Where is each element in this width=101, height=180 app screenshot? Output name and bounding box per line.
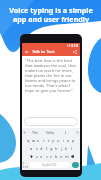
staticText: i (63, 138, 65, 143)
button[interactable]: i (61, 136, 66, 144)
staticText: s (36, 146, 38, 151)
staticText: I (65, 130, 67, 135)
button[interactable]: Hello (42, 128, 58, 136)
staticText: q (27, 138, 30, 143)
button[interactable]: v (49, 152, 54, 160)
staticText: j (61, 146, 63, 151)
button[interactable]: n (59, 152, 64, 160)
button[interactable]: t (46, 136, 51, 144)
staticText: Voice typing is a simple app and user fr… (9, 5, 93, 24)
staticText: Hello (46, 130, 55, 135)
button[interactable]: k (64, 144, 69, 152)
button[interactable]: b (54, 152, 59, 160)
button[interactable]: Enter (72, 162, 79, 168)
staticText: o (67, 138, 70, 143)
staticText: a (30, 146, 33, 151)
button[interactable]: f (44, 144, 49, 152)
button[interactable]: Share (72, 49, 78, 55)
button[interactable] (24, 117, 78, 126)
staticText: v (50, 154, 53, 159)
staticText: m (65, 154, 69, 159)
staticText: w (32, 138, 36, 143)
button[interactable]: I (58, 128, 74, 136)
staticText: Talk to Text (32, 49, 55, 55)
button[interactable]: p (71, 136, 76, 144)
button[interactable]: Voice input (74, 128, 80, 136)
staticText: The (32, 130, 38, 135)
staticText: z (36, 154, 38, 159)
staticText: y (52, 138, 55, 143)
staticText: h (55, 146, 58, 151)
staticText: b (55, 154, 58, 159)
button[interactable]: o (66, 136, 71, 144)
button[interactable]: Symbols (23, 162, 29, 168)
button[interactable]: z (34, 152, 39, 160)
staticText: k (65, 146, 68, 151)
staticText: p (72, 138, 75, 143)
button[interactable]: y (51, 136, 56, 144)
staticText: f (46, 146, 48, 151)
button[interactable]: q (26, 136, 31, 144)
staticText: n (60, 154, 63, 159)
button[interactable]: m (64, 152, 69, 160)
staticText: u (57, 138, 60, 143)
button[interactable]: a (29, 144, 34, 152)
staticText: g (50, 146, 53, 151)
button[interactable]: d (39, 144, 44, 152)
button[interactable]: The (27, 128, 42, 136)
button[interactable]: Backspace (69, 152, 75, 160)
button[interactable]: e (36, 136, 41, 144)
staticText: c (46, 154, 48, 159)
button[interactable]: r (41, 136, 46, 144)
button[interactable]: w (31, 136, 36, 144)
button[interactable]: j (59, 144, 64, 152)
button[interactable]: u (56, 136, 61, 144)
button[interactable]: More (22, 128, 27, 136)
staticText: English (US) (42, 163, 57, 167)
button[interactable]: x (39, 152, 44, 160)
button[interactable]: c (44, 152, 49, 160)
button[interactable]: Back (24, 49, 30, 55)
staticText: l (71, 146, 73, 151)
staticText: e (37, 138, 40, 143)
staticText: t (48, 138, 50, 143)
button[interactable]: l (69, 144, 74, 152)
button[interactable]: s (34, 144, 39, 152)
staticText: x (40, 154, 43, 159)
staticText: d (40, 146, 43, 151)
button[interactable]: h (54, 144, 59, 152)
button[interactable]: English (US) (29, 162, 70, 168)
button[interactable]: Shift (28, 152, 34, 160)
staticText: ?123 (23, 162, 29, 168)
staticText: "The best love is the kind that awakens … (25, 58, 78, 93)
button[interactable]: g (49, 144, 54, 152)
staticText: r (43, 138, 45, 143)
